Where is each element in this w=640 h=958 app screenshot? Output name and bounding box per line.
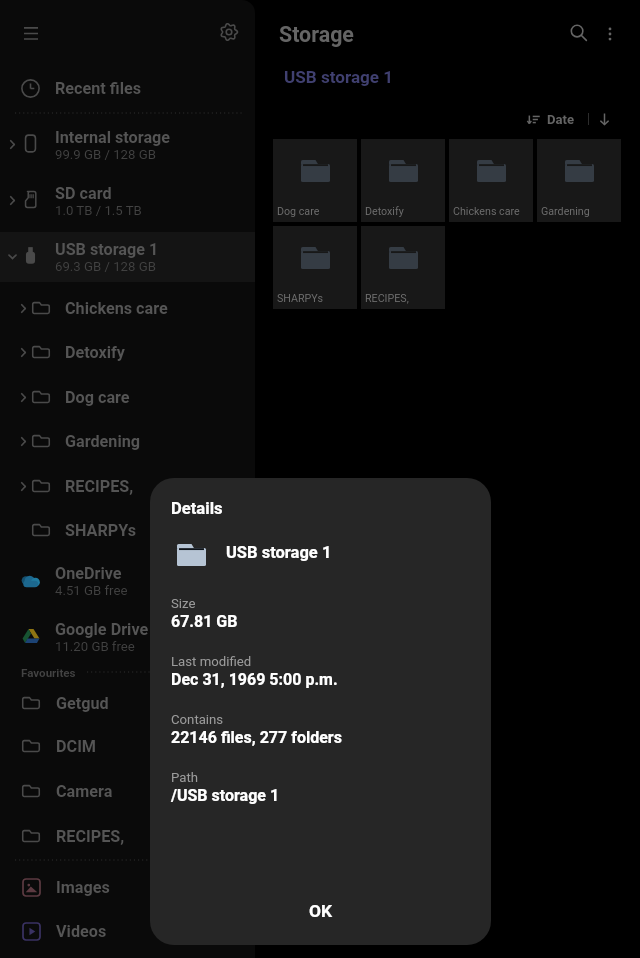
staticText: OK xyxy=(309,901,333,921)
staticText: Date xyxy=(547,112,575,127)
button[interactable]: Videos xyxy=(0,909,255,953)
button[interactable]: SHARPYs xyxy=(273,226,357,309)
staticText: 1.0 TB / 1.5 TB xyxy=(55,203,142,218)
staticText: SHARPYs xyxy=(65,521,137,540)
staticText: RECIPES, xyxy=(65,477,134,496)
button[interactable]: OneDrive xyxy=(0,562,255,614)
button[interactable]: DCIM xyxy=(0,724,255,768)
staticText: Dec 31, 1969 5:00 p.m. xyxy=(171,670,338,689)
staticText: Detoxify xyxy=(65,343,125,362)
button[interactable]: Getgud xyxy=(0,681,255,725)
staticText: Dog care xyxy=(277,205,320,218)
button[interactable]: SD card xyxy=(0,182,255,234)
staticText: 11.20 GB free xyxy=(55,639,135,654)
button[interactable]: Detoxify xyxy=(361,139,445,222)
staticText: 67.81 GB xyxy=(171,612,238,631)
staticText: Storage xyxy=(279,22,354,47)
staticText: Google Drive xyxy=(55,620,149,639)
button[interactable]: Date xyxy=(523,108,579,131)
button[interactable]: Settings xyxy=(211,14,247,50)
button[interactable]: Internal storage xyxy=(0,126,255,178)
staticText: USB storage 1 xyxy=(226,543,332,562)
button[interactable]: Camera xyxy=(0,769,255,813)
staticText: Getgud xyxy=(56,694,109,713)
staticText: Contains xyxy=(171,712,224,727)
staticText: RECIPES, xyxy=(365,292,409,305)
button[interactable]: RECIPES, xyxy=(0,464,255,508)
button[interactable]: Menu xyxy=(12,14,49,51)
button[interactable]: USB storage 1 xyxy=(0,238,255,290)
button[interactable]: Search xyxy=(561,15,597,51)
staticText: OneDrive xyxy=(55,564,122,583)
staticText: Images xyxy=(56,878,110,897)
staticText: Internal storage xyxy=(55,128,171,147)
staticText: Dog care xyxy=(65,388,130,407)
button[interactable]: Dog care xyxy=(273,139,357,222)
button[interactable]: Sort direction xyxy=(592,107,616,131)
staticText: Favourites xyxy=(21,666,76,680)
staticText: USB storage 1 xyxy=(55,240,159,259)
button[interactable]: Chickens care xyxy=(449,139,533,222)
button[interactable]: Detoxify xyxy=(0,330,255,374)
button[interactable]: Dog care xyxy=(0,375,255,419)
staticText: Details xyxy=(171,499,223,518)
staticText: DCIM xyxy=(56,737,97,756)
staticText: Gardening xyxy=(541,205,590,218)
staticText: Last modified xyxy=(171,654,252,669)
staticText: Chickens care xyxy=(453,205,520,218)
button[interactable]: RECIPES, xyxy=(361,226,445,309)
staticText: SD card xyxy=(55,184,112,203)
staticText: 4.51 GB free xyxy=(55,583,128,598)
button[interactable]: Gardening xyxy=(0,419,255,463)
staticText: Videos xyxy=(56,922,107,941)
staticText: RECIPES, xyxy=(56,827,125,846)
button[interactable]: Gardening xyxy=(537,139,621,222)
staticText: Recent files xyxy=(55,79,142,98)
button[interactable]: SHARPYs xyxy=(0,508,255,552)
button[interactable]: Images xyxy=(0,865,255,909)
staticText: Detoxify xyxy=(365,205,404,218)
staticText: Camera xyxy=(56,782,113,801)
button[interactable]: Google Drive xyxy=(0,618,255,670)
button[interactable]: OK xyxy=(287,893,355,929)
button[interactable]: USB storage 1 xyxy=(276,63,402,91)
button[interactable]: Chickens care xyxy=(0,286,255,330)
staticText: 99.9 GB / 128 GB xyxy=(55,147,156,162)
staticText: SHARPYs xyxy=(277,292,323,305)
button[interactable]: Recent files xyxy=(0,66,255,110)
staticText: 69.3 GB / 128 GB xyxy=(55,259,156,274)
button[interactable]: More options xyxy=(594,18,626,50)
staticText: Chickens care xyxy=(65,299,168,318)
button[interactable]: RECIPES, xyxy=(0,814,255,858)
staticText: Size xyxy=(171,596,196,611)
staticText: USB storage 1 xyxy=(284,67,394,87)
staticText: 22146 files, 277 folders xyxy=(171,728,342,747)
staticText: Gardening xyxy=(65,432,141,451)
staticText: /USB storage 1 xyxy=(171,786,280,805)
staticText: Path xyxy=(171,770,198,785)
